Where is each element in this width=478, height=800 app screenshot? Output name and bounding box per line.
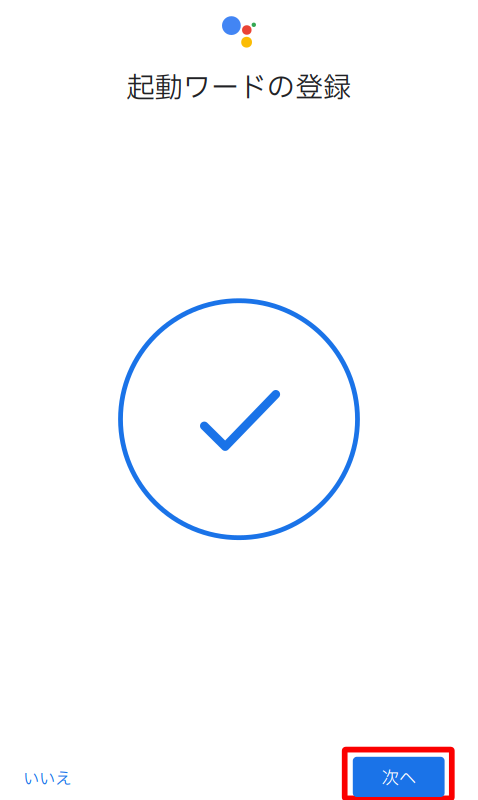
staticText: いいえ [23, 767, 71, 791]
staticText: 次へ [382, 766, 416, 792]
button[interactable]: いいえ [12, 759, 82, 799]
staticText: 起動ワードの登録 [127, 67, 351, 109]
button[interactable]: 次へ [341, 746, 456, 800]
